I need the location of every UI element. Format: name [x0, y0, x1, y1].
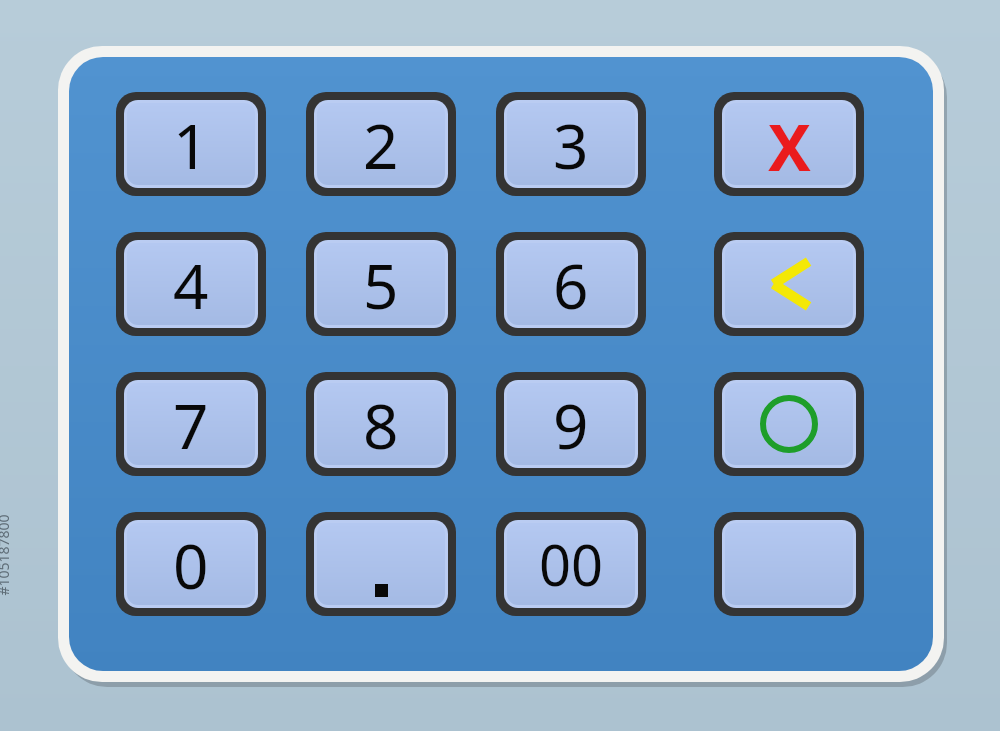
staticText: 9	[553, 383, 589, 465]
staticText: 4	[173, 243, 209, 325]
button[interactable]: 5	[306, 232, 456, 336]
button[interactable]: 7	[116, 372, 266, 476]
button[interactable]: Enter	[714, 372, 864, 476]
staticText: 8	[363, 383, 399, 465]
staticText: 0	[173, 523, 209, 605]
button[interactable]: 00	[496, 512, 646, 616]
staticText: 00	[539, 526, 604, 602]
button[interactable]: Decimal point	[306, 512, 456, 616]
button[interactable]: Blank key	[714, 512, 864, 616]
staticText: 7	[173, 383, 209, 465]
staticText: 2	[363, 103, 399, 185]
button[interactable]: 0	[116, 512, 266, 616]
button[interactable]: Backspace	[714, 232, 864, 336]
button[interactable]: 1	[116, 92, 266, 196]
staticText: 6	[553, 243, 589, 325]
button[interactable]: 4	[116, 232, 266, 336]
button[interactable]: 9	[496, 372, 646, 476]
button[interactable]: 2	[306, 92, 456, 196]
staticText: 1	[173, 103, 209, 185]
staticText: #105187800	[0, 513, 12, 595]
staticText: 5	[363, 243, 399, 325]
button[interactable]: 8	[306, 372, 456, 476]
button[interactable]: 6	[496, 232, 646, 336]
staticText: X	[768, 103, 811, 185]
staticText: 3	[553, 103, 589, 185]
button[interactable]: Cancel	[714, 92, 864, 196]
button[interactable]: 3	[496, 92, 646, 196]
